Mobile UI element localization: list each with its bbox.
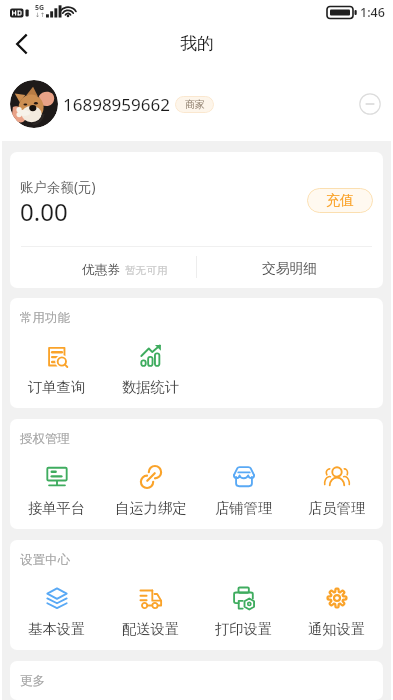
button[interactable]: 基本设置 [10, 587, 104, 638]
staticText: 授权管理 [20, 431, 70, 447]
button[interactable]: 订单查询 [10, 345, 104, 396]
staticText: 优惠券 [82, 262, 121, 278]
button[interactable]: 数据统计 [104, 345, 197, 396]
staticText: 店铺管理 [215, 499, 273, 517]
staticText: 1:46 [360, 4, 385, 21]
staticText: 16898959662 [63, 93, 170, 116]
staticText: 商家 [185, 98, 205, 111]
staticText: 打印设置 [215, 620, 273, 638]
staticText: 0.00 [20, 195, 68, 228]
button[interactable]: 店员管理 [290, 466, 383, 517]
button[interactable]: 接单平台 [10, 466, 104, 517]
staticText: ↓↑ [35, 11, 46, 18]
button[interactable]: Collapse [359, 93, 381, 115]
staticText: 接单平台 [28, 499, 86, 517]
staticText: 账户余额(元) [20, 178, 96, 196]
staticText: 设置中心 [20, 552, 70, 568]
staticText: 配送设置 [122, 620, 180, 638]
staticText: 常用功能 [20, 310, 70, 326]
button[interactable]: 店铺管理 [197, 466, 290, 517]
staticText: 我的 [180, 33, 214, 54]
staticText: 更多 [20, 673, 45, 689]
staticText: 交易明细 [262, 260, 318, 277]
staticText: 通知设置 [308, 620, 366, 638]
button[interactable]: 充值 [307, 188, 373, 213]
button[interactable]: 自运力绑定 [104, 466, 197, 517]
staticText: 自运力绑定 [115, 499, 187, 517]
button[interactable]: 打印设置 [197, 587, 290, 638]
staticText: 订单查询 [28, 378, 86, 396]
button[interactable]: 通知设置 [290, 587, 383, 638]
staticText: 5G [35, 3, 45, 13]
button[interactable]: 优惠券 [10, 246, 196, 288]
staticText: 店员管理 [308, 499, 366, 517]
button[interactable]: 交易明细 [197, 246, 383, 288]
staticText: 暂无可用 [125, 264, 168, 277]
button[interactable]: 配送设置 [104, 587, 197, 638]
staticText: 基本设置 [28, 620, 86, 638]
staticText: 充值 [326, 192, 354, 210]
staticText: 数据统计 [122, 378, 180, 396]
button[interactable]: Back [0, 22, 44, 66]
